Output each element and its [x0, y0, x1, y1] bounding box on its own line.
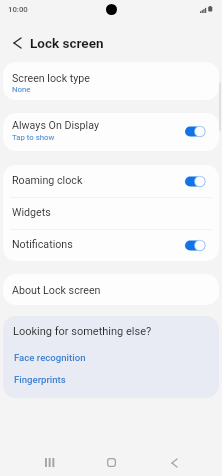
- staticText: Tap to show: [12, 133, 55, 142]
- button[interactable]: Navigate up: [5, 31, 29, 55]
- button[interactable]: Roaming clock: [3, 165, 219, 197]
- staticText: Roaming clock: [12, 174, 83, 187]
- button[interactable]: Widgets: [3, 197, 219, 229]
- button[interactable]: Toggle: [185, 239, 206, 252]
- button[interactable]: Fingerprints: [14, 374, 66, 385]
- button[interactable]: Back: [162, 450, 187, 475]
- staticText: Lock screen: [30, 35, 104, 51]
- button[interactable]: Face recognition: [14, 352, 86, 363]
- staticText: Widgets: [12, 206, 51, 219]
- staticText: About Lock screen: [12, 284, 101, 297]
- staticText: Notifications: [12, 238, 73, 251]
- staticText: Always On Display: [12, 119, 99, 132]
- button[interactable]: Toggle: [185, 175, 206, 188]
- button[interactable]: Home: [99, 450, 124, 475]
- button[interactable]: Toggle: [185, 125, 206, 138]
- button[interactable]: About Lock screen: [3, 274, 219, 305]
- staticText: Screen lock type: [12, 72, 90, 85]
- staticText: None: [12, 85, 31, 94]
- staticText: 10:00: [8, 5, 28, 14]
- button[interactable]: Always On Display: [3, 113, 219, 151]
- button[interactable]: Screen lock type: [3, 62, 219, 100]
- button[interactable]: Recent apps: [37, 450, 62, 475]
- staticText: Looking for something else?: [13, 325, 152, 338]
- button[interactable]: Notifications: [3, 229, 219, 261]
